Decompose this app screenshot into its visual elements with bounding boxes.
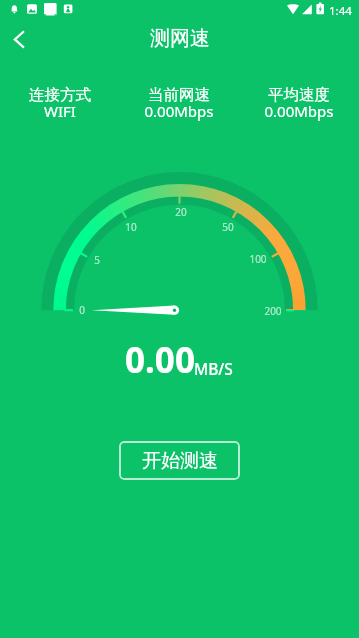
staticText: 开始测速	[142, 449, 218, 473]
staticText: 5	[94, 253, 100, 267]
staticText: MB/S	[194, 358, 233, 379]
staticText: 连接方式	[29, 85, 91, 105]
staticText: 200	[264, 304, 282, 318]
staticText: 1:44	[329, 3, 352, 19]
staticText: WIFI	[44, 101, 76, 121]
staticText: 0	[79, 303, 85, 317]
staticText: 0.00Mbps	[264, 101, 334, 121]
staticText: 0.00	[125, 336, 195, 384]
button[interactable]: 开始测速	[119, 441, 240, 480]
staticText: 10	[125, 220, 137, 234]
staticText: 当前网速	[148, 85, 210, 105]
staticText: 100	[249, 252, 267, 266]
staticText: 平均速度	[268, 85, 330, 105]
staticText: 0.00Mbps	[144, 101, 214, 121]
staticText: 测网速	[150, 26, 210, 51]
staticText: 20	[175, 205, 187, 219]
staticText: 50	[222, 220, 234, 234]
button[interactable]: Back	[0, 19, 44, 57]
